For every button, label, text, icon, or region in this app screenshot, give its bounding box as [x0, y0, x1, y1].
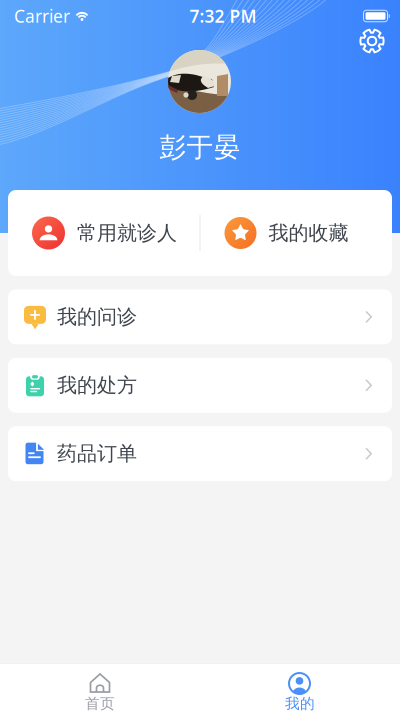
button[interactable]: 首页	[0, 663, 200, 715]
staticText: 7:32 PM	[189, 4, 256, 27]
staticText: 我的处方	[57, 373, 137, 398]
staticText: 彭于晏	[159, 131, 240, 164]
staticText: Carrier	[14, 4, 70, 27]
staticText: 常用就诊人	[77, 221, 177, 245]
button[interactable]: Settings	[352, 21, 392, 61]
staticText: 我的	[285, 694, 315, 712]
staticText: 我的收藏	[268, 221, 348, 245]
button[interactable]: 我的问诊	[8, 289, 392, 344]
staticText: 药品订单	[57, 441, 137, 466]
staticText: 我的问诊	[57, 305, 137, 329]
button[interactable]: 常用就诊人	[8, 190, 199, 276]
button[interactable]: 我的	[200, 663, 400, 715]
staticText: 首页	[85, 694, 115, 712]
button[interactable]: 我的收藏	[200, 190, 392, 276]
button[interactable]: 药品订单	[8, 426, 392, 481]
button[interactable]: 我的处方	[8, 358, 392, 413]
